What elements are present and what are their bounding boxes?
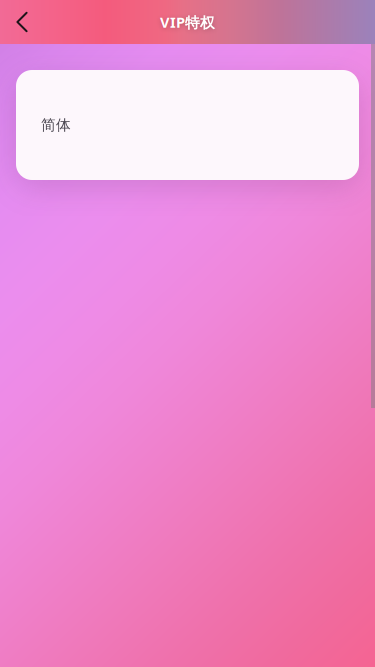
- staticText: 简体: [41, 116, 71, 134]
- staticText: VIP特权: [160, 12, 215, 32]
- button[interactable]: Back: [0, 0, 44, 44]
